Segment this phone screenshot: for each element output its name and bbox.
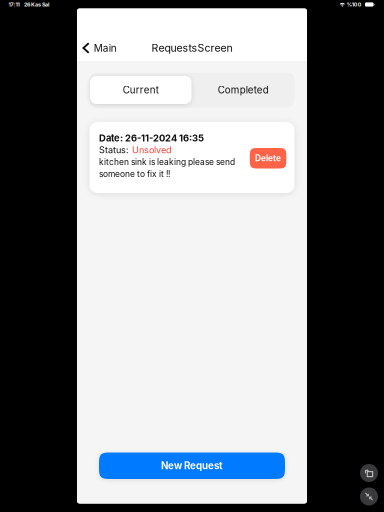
button[interactable]: Main	[77, 38, 124, 58]
staticText: Completed	[218, 84, 269, 96]
staticText: 17:11	[9, 1, 20, 8]
staticText: RequestsScreen	[151, 42, 232, 54]
staticText: Status:	[99, 144, 132, 155]
button[interactable]: Completed	[192, 72, 294, 107]
staticText: Date: 26-11-2024 16:35	[99, 132, 204, 144]
staticText: New Request	[161, 460, 223, 472]
button[interactable]: New Request	[99, 452, 285, 479]
staticText: kitchen sink is leaking please send	[99, 157, 235, 167]
staticText: 26 Kas Sal	[24, 1, 49, 8]
staticText: someone to fix it !!	[99, 169, 170, 179]
staticText: Main	[94, 42, 117, 54]
staticText: %100	[347, 1, 362, 8]
button[interactable]: Shrink window	[360, 487, 378, 505]
button[interactable]: Window options	[360, 464, 378, 482]
staticText: Delete	[255, 153, 281, 163]
button[interactable]: Delete	[250, 148, 286, 168]
staticText: Current	[123, 84, 159, 96]
button[interactable]: Current	[89, 72, 192, 107]
staticText: Unsolved	[132, 144, 172, 155]
